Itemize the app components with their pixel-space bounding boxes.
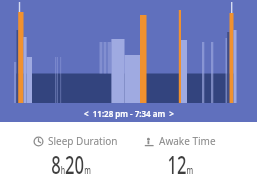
staticText: 8h20m [51, 146, 91, 181]
staticText: 12m [167, 146, 194, 181]
button[interactable]: Sleep Duration [7, 122, 135, 183]
button[interactable]: < 11:28 pm - 7:34 am > [0, 0, 257, 122]
button[interactable]: Awake Time [116, 122, 245, 183]
staticText: < 11:28 pm - 7:34 am > [84, 108, 174, 119]
staticText: Awake Time [159, 134, 216, 148]
staticText: Sleep Duration [48, 134, 118, 148]
